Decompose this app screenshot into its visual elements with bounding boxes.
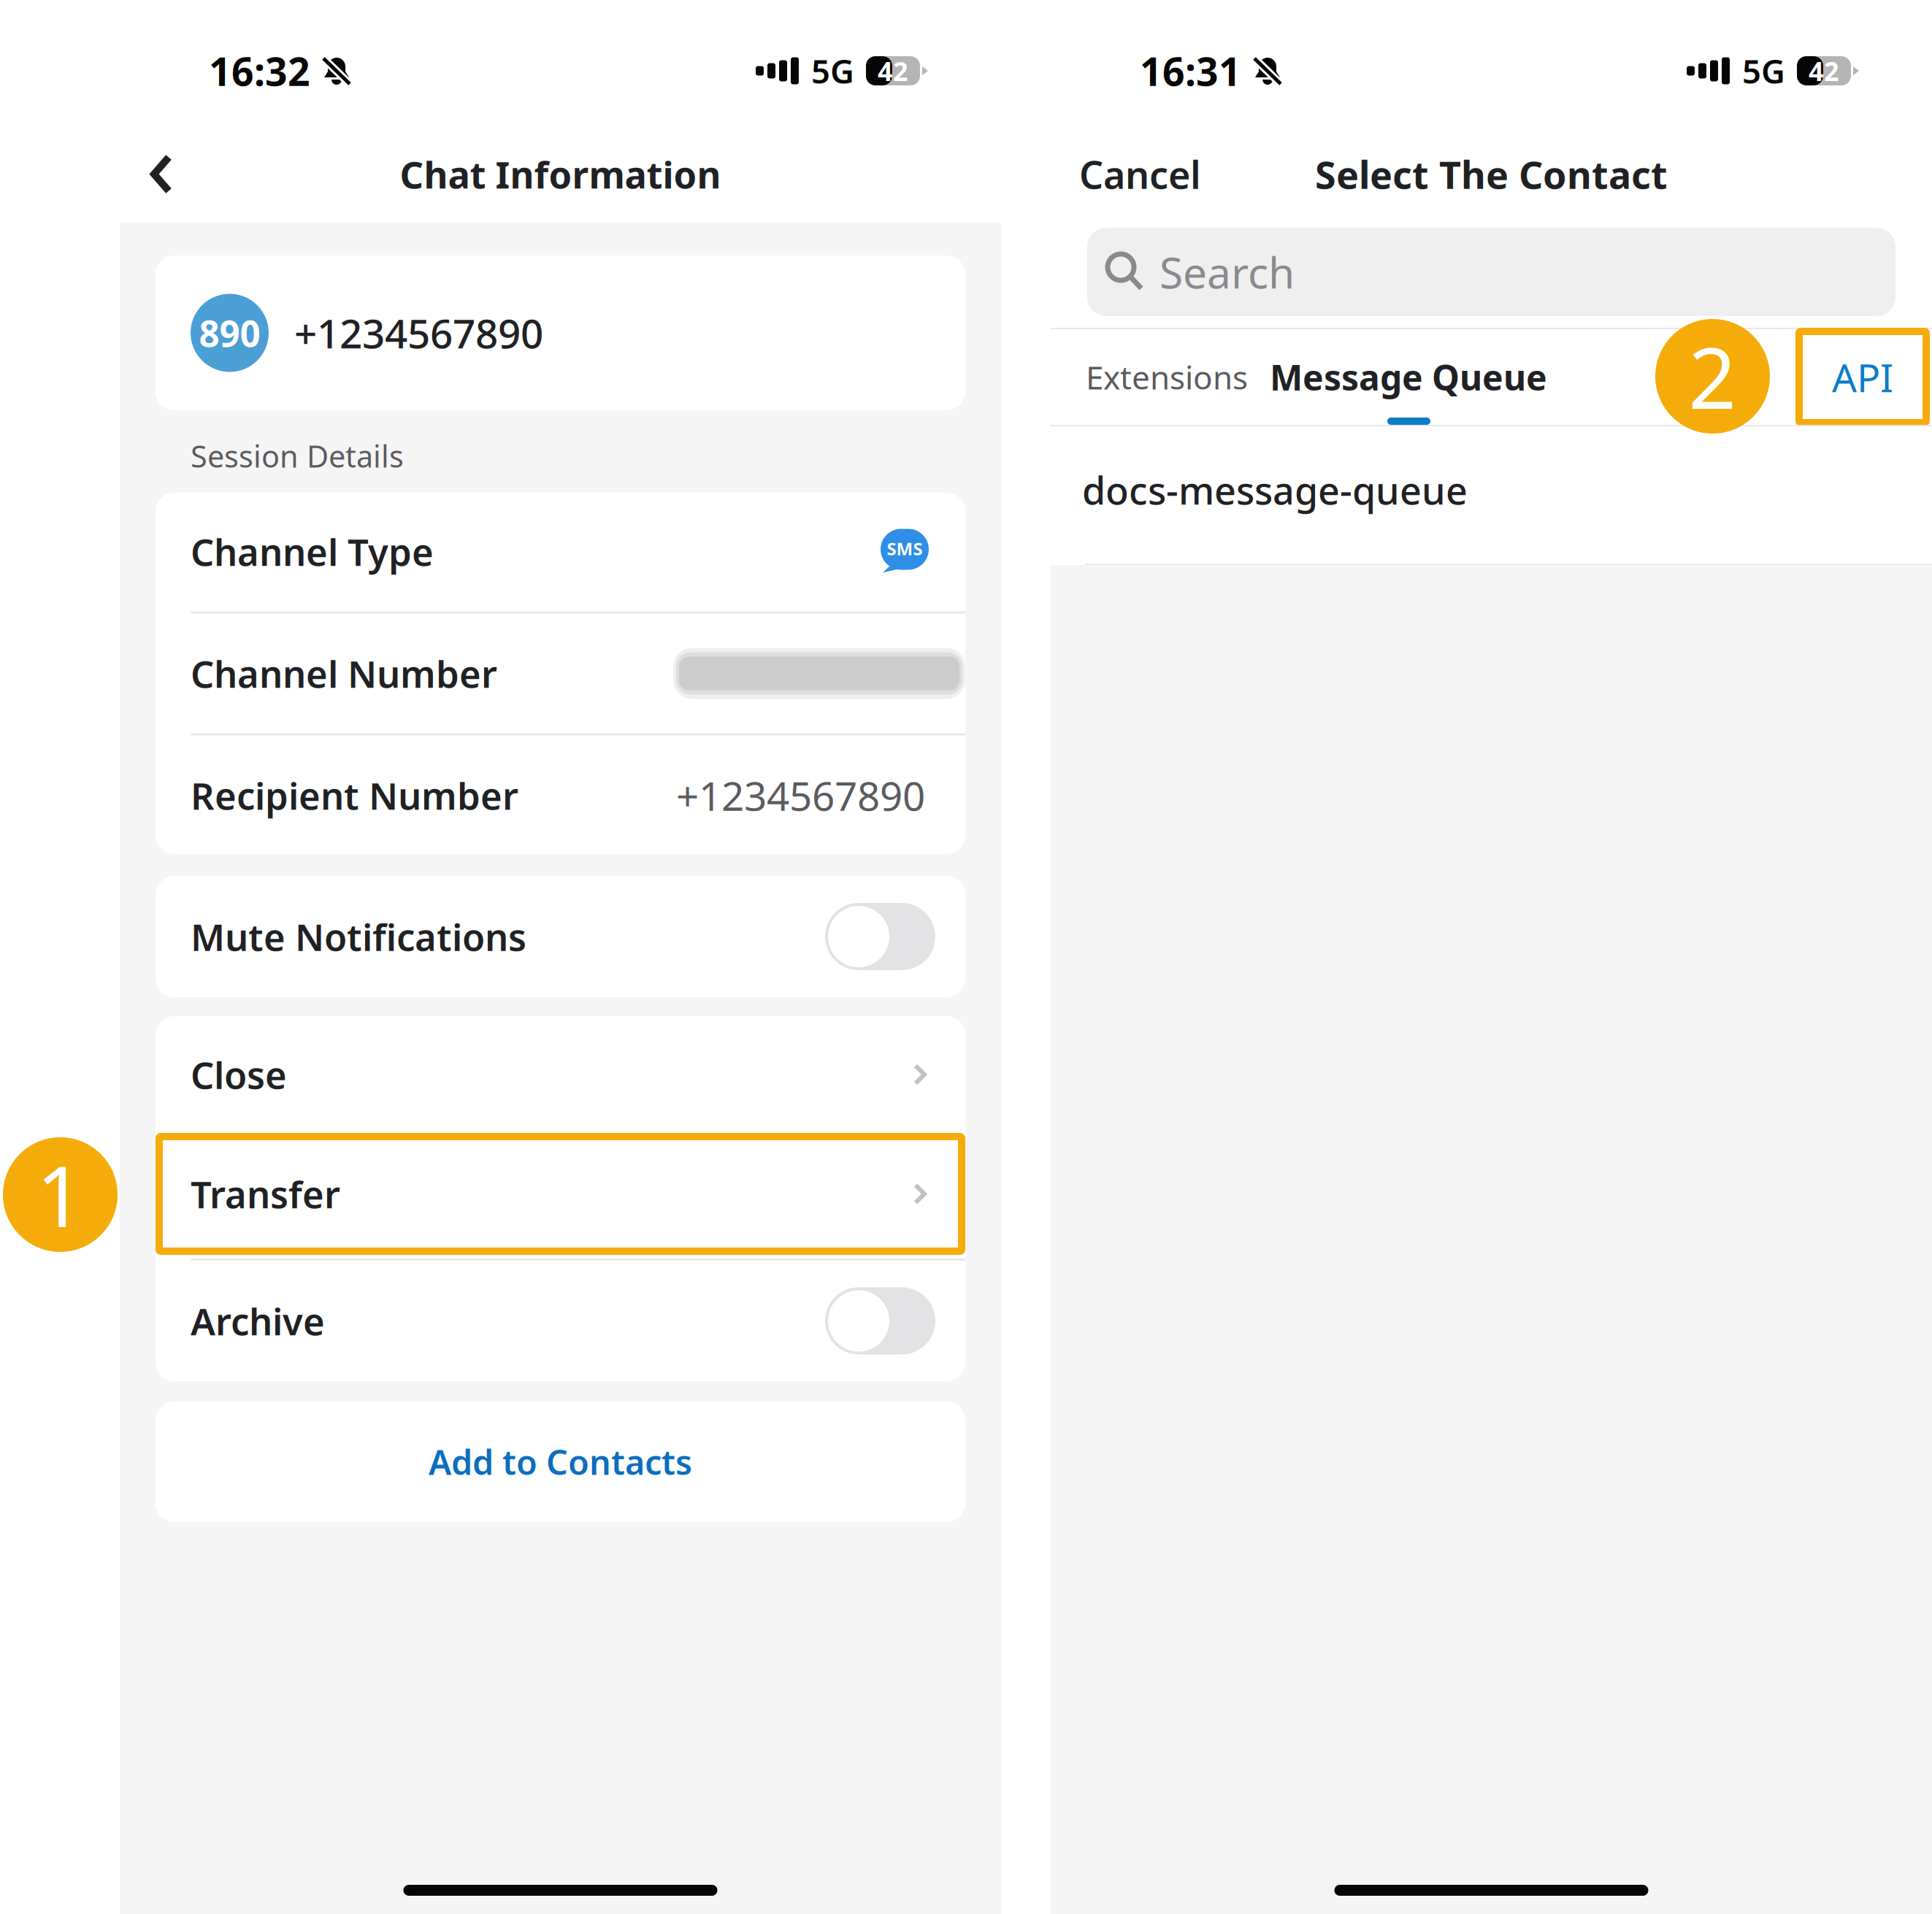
staticText: Mute Notifications — [191, 912, 526, 961]
button[interactable]: API — [1795, 328, 1930, 426]
button[interactable]: Mute Notifications toggle — [825, 903, 935, 970]
button[interactable]: Add to Contacts — [156, 1402, 965, 1522]
staticText: Cancel — [1079, 149, 1201, 199]
staticText: 2 — [1688, 321, 1737, 432]
staticText: 16:32 — [209, 45, 310, 97]
staticText: Chat Information — [400, 150, 721, 199]
staticText: Transfer — [191, 1169, 340, 1218]
button[interactable]: Message Queue — [1257, 330, 1560, 424]
staticText: Channel Type — [191, 527, 434, 576]
staticText: Archive — [191, 1296, 325, 1345]
staticText: Select The Contact — [1315, 149, 1668, 199]
staticText: Session Details — [191, 436, 404, 476]
button[interactable]: Transfer — [156, 1133, 965, 1255]
staticText: 1 — [36, 1139, 84, 1250]
button[interactable]: Cancel — [1051, 138, 1216, 211]
button[interactable]: docs-message-queue — [1051, 426, 1932, 564]
staticText: Recipient Number — [191, 771, 518, 820]
staticText: API — [1832, 351, 1893, 403]
button[interactable]: Back — [120, 134, 203, 214]
staticText: Close — [191, 1050, 287, 1099]
staticText: 5G — [1742, 49, 1785, 93]
staticText: SMS — [887, 537, 923, 560]
staticText: Message Queue — [1270, 354, 1547, 400]
staticText: 5G — [811, 49, 854, 93]
staticText: +1234567890 — [294, 306, 543, 359]
staticText: 42 — [878, 53, 908, 88]
button[interactable]: Archive toggle — [825, 1287, 935, 1354]
button[interactable]: Extensions — [1051, 330, 1257, 424]
staticText: 42 — [1809, 53, 1839, 88]
staticText: Search — [1159, 243, 1295, 300]
staticText: 16:31 — [1140, 45, 1241, 97]
staticText: Add to Contacts — [429, 1439, 692, 1484]
staticText: docs-message-queue — [1082, 465, 1468, 515]
staticText: 890 — [199, 309, 260, 357]
button[interactable]: Close — [156, 1016, 965, 1133]
staticText: Channel Number — [191, 649, 497, 698]
staticText: Extensions — [1086, 356, 1248, 398]
staticText: +1234567890 — [676, 769, 925, 822]
